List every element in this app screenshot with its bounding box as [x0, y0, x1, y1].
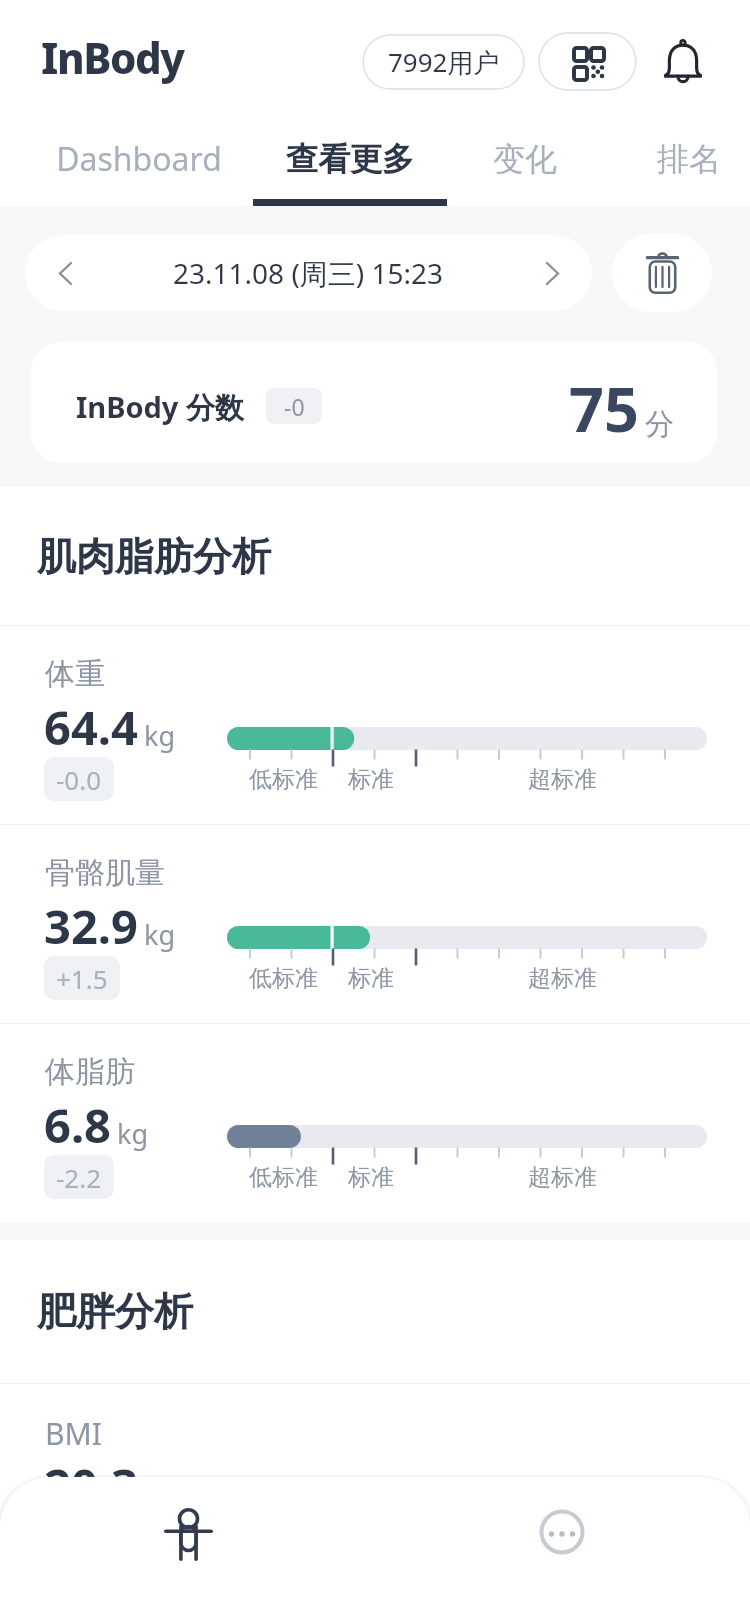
staticText: 肥胖分析 [37, 1287, 193, 1336]
staticText: 骨骼肌量 [45, 854, 165, 892]
staticText: kg [144, 717, 176, 754]
staticText: 超标准 [528, 765, 597, 794]
staticText: 分 [645, 406, 674, 443]
staticText: 23.11.08 (周三) 15:23 [173, 254, 444, 292]
staticText: 32.9 [44, 894, 138, 958]
staticText: 超标准 [528, 1163, 597, 1192]
staticText: 查看更多 [286, 139, 414, 179]
staticText: -2.2 [56, 1160, 102, 1195]
staticText: 20.3 [44, 1453, 138, 1517]
staticText: -0.0 [56, 762, 102, 797]
staticText: 排名 [657, 139, 721, 179]
staticText: 7992用户 [388, 44, 500, 80]
staticText: 变化 [493, 139, 557, 179]
button[interactable]: 体脂肪 [0, 1024, 750, 1222]
staticText: Dashboard [56, 137, 222, 181]
button[interactable]: Previous day [43, 251, 87, 295]
staticText: 低标准 [249, 765, 318, 794]
staticText: 体重 [45, 655, 105, 693]
staticText: 6.8 [44, 1093, 111, 1157]
button[interactable]: 骨骼肌量 [0, 825, 750, 1023]
staticText: 超标准 [528, 964, 597, 993]
staticText: 体脂肪 [45, 1053, 135, 1091]
staticText: InBody [41, 29, 184, 86]
button[interactable]: Dashboard [0, 113, 278, 206]
staticText: 64.4 [44, 695, 138, 759]
staticText: +1.5 [56, 961, 108, 996]
button[interactable]: 体重 [0, 626, 750, 824]
staticText: 75 [569, 367, 639, 450]
button[interactable]: Body composition [139, 1493, 237, 1577]
staticText: 标准 [348, 1163, 394, 1192]
button[interactable]: Next day [530, 251, 574, 295]
staticText: BMI [45, 1413, 102, 1454]
button[interactable]: 7992用户 [362, 34, 525, 90]
staticText: 低标准 [249, 964, 318, 993]
button[interactable]: Scan QR code [538, 32, 637, 91]
staticText: 肌肉脂肪分析 [37, 532, 271, 581]
staticText: kg [117, 1115, 149, 1152]
staticText: 标准 [348, 964, 394, 993]
button[interactable]: 查看更多 [278, 113, 422, 206]
button[interactable]: More options [514, 1490, 610, 1574]
button[interactable]: BMI [0, 1384, 750, 1582]
staticText: 标准 [348, 765, 394, 794]
button[interactable]: 排名 [627, 113, 750, 206]
staticText: kg/m² [144, 1475, 220, 1512]
button[interactable]: 变化 [422, 113, 627, 206]
button[interactable]: Delete record [612, 234, 712, 312]
staticText: kg [144, 916, 176, 953]
button[interactable]: 23.11.08 (周三) 15:23 [25, 235, 592, 311]
staticText: 超标准 [528, 1523, 597, 1552]
button[interactable]: InBody 分数 [31, 342, 717, 463]
staticText: -0 [284, 391, 305, 422]
staticText: InBody 分数 [76, 387, 244, 427]
staticText: 低标准 [249, 1163, 318, 1192]
button[interactable]: Notifications [654, 31, 712, 89]
